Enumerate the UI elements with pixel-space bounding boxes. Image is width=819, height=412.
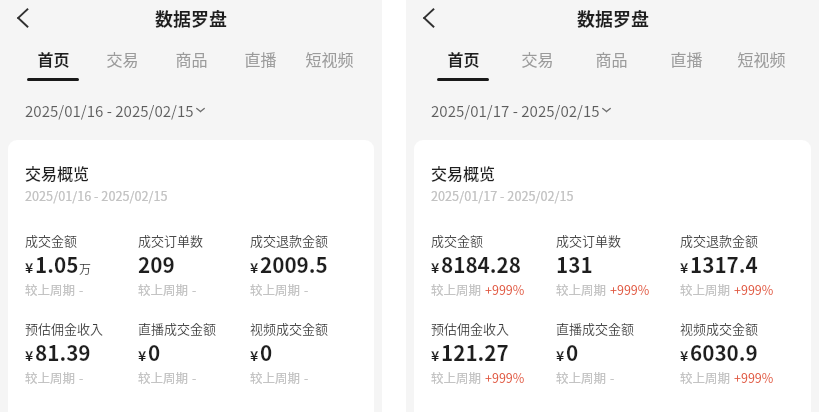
staticText: ¥ [556, 345, 565, 365]
staticText: 成交金额 [431, 231, 484, 250]
staticText: 较上周期 [431, 368, 482, 386]
staticText: - [304, 368, 309, 386]
staticText: 万 [79, 260, 92, 277]
staticText: 短视频 [305, 47, 354, 70]
staticText: 1.05 [35, 249, 79, 279]
staticText: 209 [138, 249, 175, 279]
staticText: 2025/01/17 - 2025/02/15 [431, 100, 600, 122]
staticText: 较上周期 [250, 368, 301, 386]
staticText: ¥ [250, 345, 259, 365]
staticText: 2025/01/17 - 2025/02/15 [431, 186, 574, 204]
staticText: 0 [148, 337, 161, 367]
button[interactable]: 商品 [157, 41, 226, 87]
button[interactable]: 2025/01/17 - 2025/02/15 [425, 94, 617, 128]
staticText: 较上周期 [431, 280, 482, 298]
staticText: 较上周期 [556, 280, 607, 298]
staticText: 视频成交金额 [680, 319, 759, 338]
staticText: ¥ [431, 257, 440, 277]
button[interactable]: 交易 [88, 41, 157, 87]
staticText: 成交订单数 [556, 231, 622, 250]
staticText: - [192, 280, 197, 298]
button[interactable]: 商品 [574, 41, 649, 87]
staticText: 81.39 [35, 337, 91, 367]
staticText: ¥ [431, 345, 440, 365]
staticText: ¥ [25, 257, 34, 277]
staticText: ¥ [680, 257, 689, 277]
staticText: 较上周期 [556, 368, 607, 386]
staticText: 121.27 [441, 337, 509, 367]
staticText: 首页 [37, 47, 70, 70]
staticText: - [610, 368, 615, 386]
staticText: ¥ [25, 345, 34, 365]
staticText: 成交订单数 [138, 231, 204, 250]
staticText: 较上周期 [250, 280, 301, 298]
staticText: - [192, 368, 197, 386]
staticText: +999% [485, 280, 525, 298]
staticText: - [79, 368, 84, 386]
staticText: ¥ [138, 345, 147, 365]
staticText: +999% [734, 368, 774, 386]
staticText: 0 [566, 337, 579, 367]
staticText: 直播 [670, 47, 703, 70]
button[interactable]: 2025/01/16 - 2025/02/15 [19, 94, 211, 128]
button[interactable]: 交易 [500, 41, 574, 87]
staticText: 8184.28 [441, 249, 521, 279]
button[interactable]: Back [415, 4, 443, 32]
staticText: 交易概览 [431, 161, 496, 184]
staticText: 交易 [521, 47, 554, 70]
staticText: 交易 [106, 47, 139, 70]
staticText: +999% [485, 368, 525, 386]
button[interactable]: 直播 [226, 41, 295, 87]
staticText: 较上周期 [680, 368, 731, 386]
staticText: +999% [734, 280, 774, 298]
staticText: 较上周期 [138, 280, 189, 298]
staticText: 6030.9 [690, 337, 758, 367]
staticText: 成交退款金额 [250, 231, 329, 250]
staticText: 商品 [595, 47, 628, 70]
staticText: 交易概览 [25, 161, 90, 184]
staticText: 数据罗盘 [155, 5, 227, 31]
staticText: 2025/01/16 - 2025/02/15 [25, 186, 168, 204]
staticText: 2009.5 [260, 249, 328, 279]
staticText: 直播成交金额 [556, 319, 635, 338]
staticText: 预估佣金收入 [25, 319, 104, 338]
staticText: 2025/01/16 - 2025/02/15 [25, 100, 194, 122]
staticText: 1317.4 [690, 249, 758, 279]
staticText: 短视频 [737, 47, 786, 70]
staticText: 商品 [175, 47, 208, 70]
staticText: - [304, 280, 309, 298]
staticText: 较上周期 [138, 368, 189, 386]
staticText: 成交退款金额 [680, 231, 759, 250]
button[interactable]: Back [9, 4, 37, 32]
staticText: 131 [556, 249, 593, 279]
staticText: ¥ [680, 345, 689, 365]
staticText: 预估佣金收入 [431, 319, 510, 338]
staticText: ¥ [250, 257, 259, 277]
staticText: 较上周期 [25, 280, 76, 298]
staticText: +999% [610, 280, 650, 298]
button[interactable]: 首页 [18, 41, 88, 87]
button[interactable]: 短视频 [724, 41, 799, 87]
button[interactable]: 首页 [426, 41, 500, 87]
staticText: 较上周期 [25, 368, 76, 386]
staticText: 直播 [244, 47, 277, 70]
staticText: 0 [260, 337, 273, 367]
staticText: 较上周期 [680, 280, 731, 298]
staticText: 成交金额 [25, 231, 78, 250]
button[interactable]: 直播 [649, 41, 724, 87]
button[interactable]: 短视频 [295, 41, 364, 87]
staticText: - [79, 280, 84, 298]
staticText: 首页 [447, 47, 480, 70]
staticText: 直播成交金额 [138, 319, 217, 338]
staticText: 数据罗盘 [577, 5, 649, 31]
staticText: 视频成交金额 [250, 319, 329, 338]
